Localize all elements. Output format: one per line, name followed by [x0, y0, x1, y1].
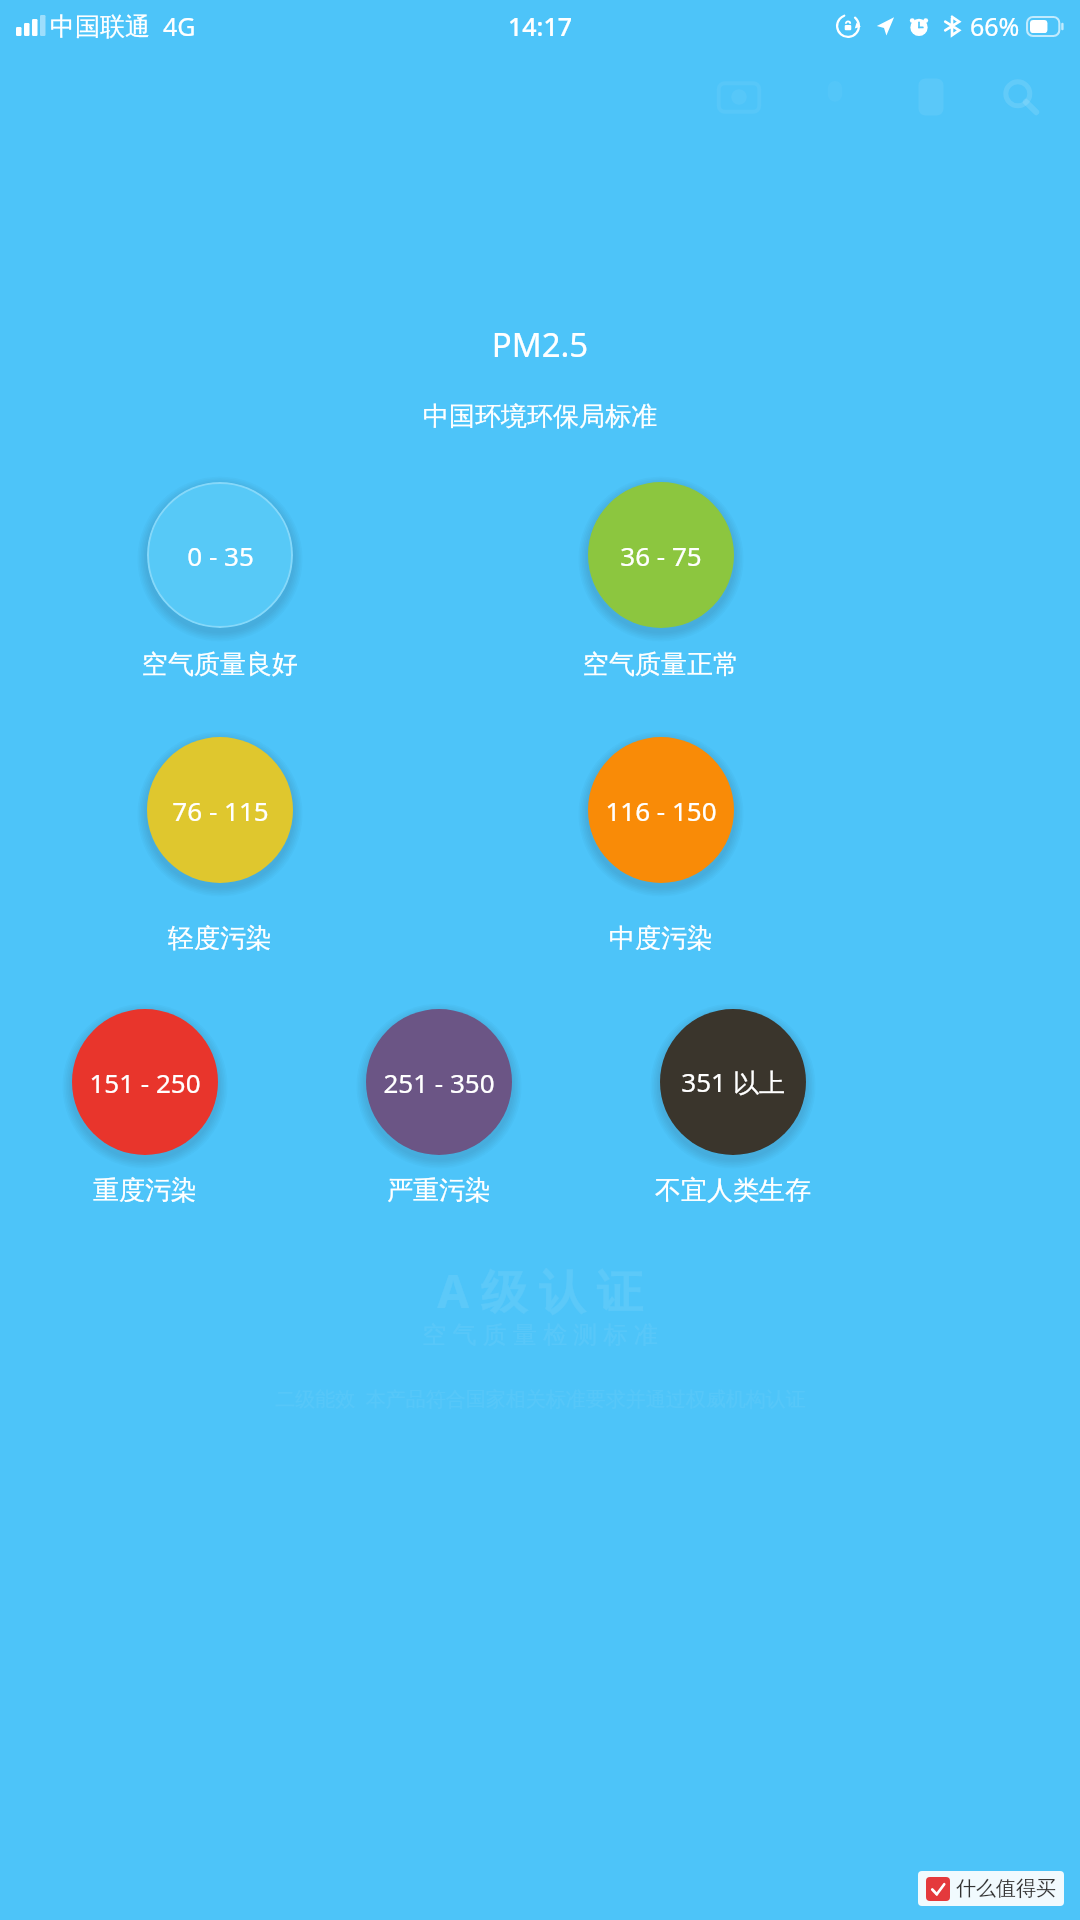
button[interactable]: 重度污染	[0, 1174, 305, 1207]
button[interactable]: 不宜人类生存	[573, 1174, 893, 1207]
button[interactable]: 轻度污染	[60, 922, 380, 955]
staticText: 151 - 250	[89, 1065, 201, 1100]
button[interactable]: 空气质量正常	[501, 648, 821, 681]
staticText: 二级能效 本产品符合国家相关标准要求并通过权威机构认证	[275, 1385, 806, 1412]
staticText: 空气质量正常	[583, 648, 739, 681]
button[interactable]: 151 - 250	[72, 1009, 218, 1155]
staticText: 251 - 350	[383, 1065, 495, 1100]
button[interactable]: 相机	[704, 62, 774, 132]
staticText: 重度污染	[93, 1174, 197, 1207]
staticText: 66%	[970, 9, 1020, 43]
staticText: 不宜人类生存	[655, 1174, 811, 1207]
button[interactable]: 36 - 75	[588, 482, 734, 628]
button[interactable]: 列表	[896, 62, 966, 132]
button[interactable]: 76 - 115	[147, 737, 293, 883]
button[interactable]: 251 - 350	[366, 1009, 512, 1155]
staticText: 76 - 115	[172, 793, 269, 828]
staticText: 中度污染	[609, 922, 713, 955]
staticText: PM2.5	[0, 322, 1080, 367]
button[interactable]: 中度污染	[501, 922, 821, 955]
staticText: 中国环境环保局标准	[0, 400, 1080, 433]
button[interactable]: 空气质量良好	[60, 648, 380, 681]
button[interactable]: 搜索	[986, 62, 1056, 132]
staticText: 4G	[163, 9, 196, 43]
staticText: 14:17	[508, 9, 573, 43]
staticText: 116 - 150	[605, 793, 717, 828]
staticText: 空气质量良好	[142, 648, 298, 681]
button[interactable]: 0 - 35	[147, 482, 293, 628]
staticText: 36 - 75	[620, 538, 702, 573]
button[interactable]: 116 - 150	[588, 737, 734, 883]
staticText: 0 - 35	[187, 538, 254, 573]
staticText: 严重污染	[387, 1174, 491, 1207]
staticText: 空 气 质 量 检 测 标 准	[422, 1317, 658, 1350]
staticText: 351 以上	[681, 1064, 785, 1100]
staticText: 什么值得买	[956, 1876, 1056, 1901]
staticText: 轻度污染	[168, 922, 272, 955]
button[interactable]: 严重污染	[279, 1174, 599, 1207]
staticText: 中国联通	[50, 11, 150, 42]
button[interactable]: 351 以上	[660, 1009, 806, 1155]
staticText: A 级 认 证	[437, 1259, 643, 1322]
